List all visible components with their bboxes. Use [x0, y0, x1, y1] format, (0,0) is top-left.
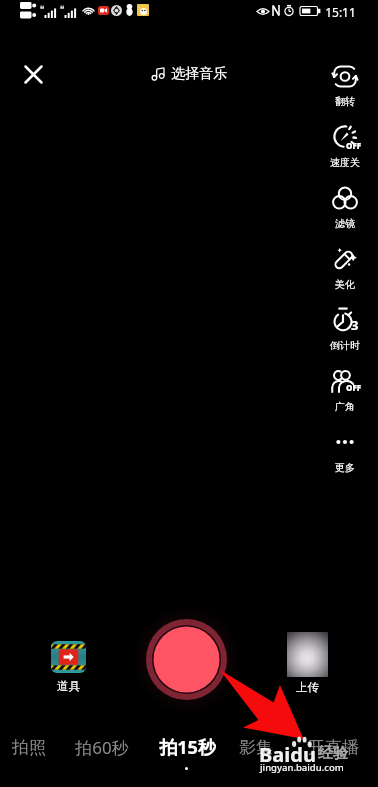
button[interactable]: 拍照 [8, 735, 50, 759]
button[interactable]: 美化 [320, 239, 370, 300]
staticText: 速度关 [330, 156, 360, 169]
button[interactable]: OFF [320, 361, 370, 422]
staticText: 影集 [239, 737, 273, 758]
button[interactable]: 选择音乐 [143, 59, 235, 89]
staticText: 经验 [318, 744, 348, 763]
button[interactable]: 拍60秒 [63, 735, 141, 759]
staticText: 倒计时 [330, 339, 360, 352]
button[interactable]: Record [146, 619, 227, 700]
staticText: 更多 [335, 461, 355, 474]
staticText: Baidu [259, 741, 316, 768]
button[interactable]: 影集 [235, 735, 277, 759]
staticText: 广角 [335, 400, 355, 413]
staticText: 翻转 [335, 95, 355, 108]
staticText: 3 [351, 316, 359, 334]
staticText: 拍15秒 [159, 735, 216, 759]
staticText: 拍60秒 [75, 736, 129, 759]
button[interactable]: 道具 [51, 641, 86, 693]
staticText: 美化 [335, 278, 355, 291]
button[interactable]: 上传 [287, 632, 328, 694]
staticText: OFF [346, 140, 361, 151]
button[interactable]: Close [12, 53, 54, 95]
staticText: 选择音乐 [171, 65, 227, 83]
staticText: 开直播 [308, 737, 359, 758]
staticText: 拍照 [12, 737, 46, 758]
staticText: jingyan.baidu.com [260, 761, 344, 774]
staticText: 滤镜 [335, 217, 355, 230]
button[interactable]: 3 [320, 300, 370, 361]
button[interactable]: 更多 [320, 422, 370, 483]
staticText: 上传 [296, 680, 319, 694]
button[interactable]: 开直播 [303, 735, 363, 759]
button[interactable]: 滤镜 [320, 178, 370, 239]
button[interactable]: 拍15秒 [152, 735, 222, 759]
staticText: 道具 [57, 679, 80, 693]
staticText: OFF [346, 382, 361, 393]
button[interactable]: OFF [320, 117, 370, 178]
button[interactable]: 翻转 [320, 56, 370, 117]
staticText: 15:11 [325, 4, 356, 20]
